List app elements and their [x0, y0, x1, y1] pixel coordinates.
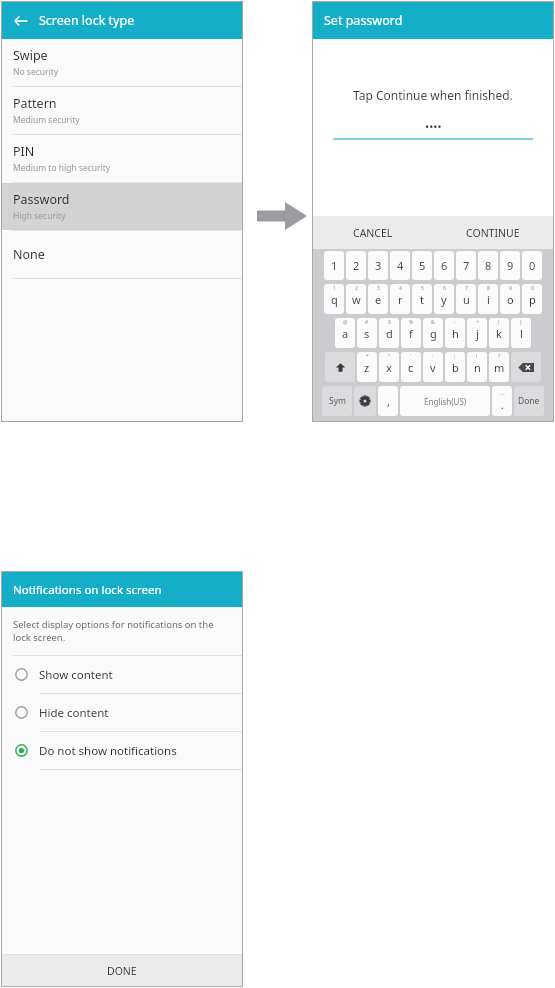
staticText: 3	[375, 258, 382, 273]
staticText: High security	[13, 210, 66, 222]
button[interactable]: #	[357, 318, 377, 348]
button[interactable]: 4	[390, 251, 410, 280]
button[interactable]: 3	[368, 251, 388, 280]
staticText: 1	[331, 258, 338, 273]
staticText: -	[454, 319, 456, 326]
staticText: g	[430, 326, 437, 341]
button[interactable]: 4	[390, 284, 410, 314]
staticText: 6	[443, 285, 446, 292]
button[interactable]: Do not show notifications	[2, 732, 242, 770]
staticText: No security	[13, 66, 59, 78]
staticText: '	[410, 353, 412, 360]
button[interactable]: 3	[368, 284, 388, 314]
button[interactable]: :	[423, 352, 443, 382]
button[interactable]: 9	[500, 284, 520, 314]
staticText: 3	[377, 285, 380, 292]
button[interactable]: Password	[2, 183, 242, 231]
staticText: l	[520, 326, 523, 341]
button[interactable]: 2	[346, 251, 366, 280]
button[interactable]: CONTINUE	[433, 216, 553, 249]
button[interactable]: 5	[412, 251, 432, 280]
button[interactable]: ?	[489, 352, 509, 382]
staticText: :	[432, 353, 434, 360]
button[interactable]: dots	[492, 386, 512, 416]
button[interactable]: Swipe	[2, 39, 242, 87]
button[interactable]: shift	[325, 352, 355, 382]
button[interactable]: '	[401, 352, 421, 382]
button[interactable]: 1	[324, 284, 344, 314]
button[interactable]: +	[467, 318, 487, 348]
staticText: Sym	[329, 395, 346, 407]
button[interactable]: Hide content	[2, 694, 242, 732]
staticText: Screen lock type	[39, 12, 135, 29]
button[interactable]: gear	[354, 386, 376, 416]
button[interactable]: &	[423, 318, 443, 348]
button[interactable]: 0	[522, 251, 542, 280]
button[interactable]: )	[511, 318, 531, 348]
button[interactable]: 5	[412, 284, 432, 314]
button[interactable]: ;	[445, 352, 465, 382]
button[interactable]: None	[2, 231, 242, 279]
staticText: s	[364, 326, 370, 341]
button[interactable]: !	[467, 352, 487, 382]
staticText: m	[494, 360, 505, 375]
staticText: v	[430, 360, 436, 375]
button[interactable]: ,	[378, 386, 398, 416]
staticText: y	[441, 292, 447, 307]
staticText: DONE	[107, 964, 137, 978]
button[interactable]: -	[445, 318, 465, 348]
button[interactable]: 1	[324, 251, 344, 280]
button[interactable]: Sym	[322, 386, 352, 416]
button[interactable]: English(US)	[400, 386, 490, 416]
staticText: +	[476, 319, 479, 326]
staticText: d	[386, 326, 393, 341]
button[interactable]: del	[511, 352, 541, 382]
staticText: j	[476, 326, 479, 341]
staticText: ;	[454, 353, 456, 360]
staticText: Medium security	[13, 114, 80, 126]
button[interactable]: (	[489, 318, 509, 348]
button[interactable]: DONE	[2, 955, 242, 986]
button[interactable]: Show content	[2, 656, 242, 694]
button[interactable]: 8	[478, 284, 498, 314]
staticText: Pattern	[13, 95, 57, 112]
staticText: 8	[485, 258, 492, 273]
staticText: 5	[419, 258, 426, 273]
staticText: "	[388, 353, 391, 360]
button[interactable]: %	[401, 318, 421, 348]
staticText: ,	[387, 394, 390, 409]
button[interactable]: 7	[456, 251, 476, 280]
button[interactable]: 6	[434, 251, 454, 280]
button[interactable]: 8	[478, 251, 498, 280]
staticText: 0	[529, 258, 536, 273]
button[interactable]: 7	[456, 284, 476, 314]
staticText: Tap Continue when finished.	[353, 87, 513, 103]
button[interactable]: Back	[6, 6, 36, 36]
staticText: 7	[463, 258, 470, 273]
staticText: w	[352, 292, 361, 307]
button[interactable]: PIN	[2, 135, 242, 183]
button[interactable]: Pattern	[2, 87, 242, 135]
button[interactable]: Done	[514, 386, 544, 416]
staticText: Do not show notifications	[39, 743, 177, 759]
staticText: 4	[399, 285, 402, 292]
button[interactable]: 9	[500, 251, 520, 280]
button[interactable]: $	[379, 318, 399, 348]
staticText: x	[386, 360, 392, 375]
button[interactable]: 6	[434, 284, 454, 314]
staticText: CONTINUE	[466, 226, 520, 240]
staticText: )	[520, 319, 522, 326]
staticText: None	[13, 246, 45, 263]
button[interactable]: CANCEL	[313, 216, 433, 249]
button[interactable]: *	[357, 352, 377, 382]
button[interactable]: 2	[346, 284, 366, 314]
staticText: *	[366, 353, 369, 360]
staticText: f	[409, 326, 413, 341]
staticText: Swipe	[13, 47, 48, 64]
staticText: !	[476, 353, 478, 360]
button[interactable]: "	[379, 352, 399, 382]
button[interactable]: @	[335, 318, 355, 348]
staticText: .	[501, 398, 504, 412]
button[interactable]: 0	[522, 284, 542, 314]
staticText: 8	[487, 285, 490, 292]
